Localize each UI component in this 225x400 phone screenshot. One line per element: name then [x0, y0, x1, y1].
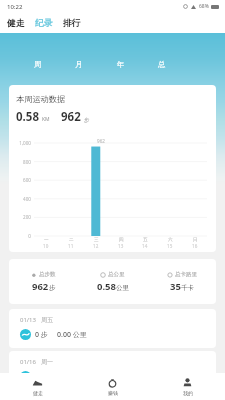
staticText: 0.58	[97, 280, 116, 293]
staticText: 962	[97, 138, 105, 144]
staticText: 总	[158, 60, 166, 69]
staticText: 千卡	[181, 284, 194, 292]
button[interactable]: 总步数	[9, 271, 78, 293]
staticText: 周一	[41, 358, 53, 366]
staticText: 14	[142, 243, 148, 249]
staticText: 年	[117, 60, 125, 69]
staticText: 本周运动数据	[16, 94, 66, 104]
staticText: 1,000	[9, 140, 31, 146]
staticText: 周五	[41, 316, 53, 324]
staticText: 公里	[116, 284, 129, 292]
staticText: 一	[44, 237, 49, 243]
staticText: 0.58	[16, 109, 39, 125]
staticText: 五	[143, 237, 148, 243]
staticText: 总公里	[108, 271, 125, 278]
button[interactable]: 赚钱	[75, 373, 150, 400]
staticText: 步	[84, 117, 90, 124]
staticText: 13	[118, 243, 124, 249]
staticText: 0.00 公里	[57, 330, 87, 340]
button[interactable]: 健走	[2, 15, 30, 32]
staticText: 400	[9, 196, 31, 202]
button[interactable]: 月	[68, 57, 90, 72]
staticText: 01/16	[20, 358, 36, 366]
staticText: 排行	[63, 18, 81, 29]
staticText: 600	[9, 177, 31, 183]
button[interactable]: 排行	[58, 15, 86, 32]
button[interactable]: 年	[110, 57, 132, 72]
staticText: 12	[93, 243, 99, 249]
staticText: 健走	[33, 390, 43, 396]
staticText: 步	[49, 284, 56, 292]
button[interactable]: 我的	[150, 373, 225, 400]
staticText: 200	[9, 214, 31, 220]
staticText: 16	[192, 243, 198, 249]
staticText: 10:22	[7, 3, 23, 11]
staticText: KM	[42, 116, 50, 123]
staticText: 962	[61, 109, 81, 125]
staticText: 月	[75, 60, 83, 69]
staticText: 0	[9, 233, 31, 239]
staticText: 0 步	[35, 372, 48, 382]
button[interactable]: 总公里	[78, 271, 147, 293]
staticText: 962	[32, 280, 49, 293]
button[interactable]: 纪录	[30, 15, 58, 32]
staticText: 三	[94, 237, 99, 243]
button[interactable]: 01/16	[9, 351, 216, 390]
staticText: 六	[168, 237, 173, 243]
staticText: 11	[68, 243, 74, 249]
staticText: 日	[193, 237, 198, 243]
button[interactable]: 01/13	[9, 309, 216, 348]
staticText: 68%	[199, 3, 209, 10]
staticText: 10	[43, 243, 49, 249]
staticText: 0 步	[35, 330, 48, 340]
staticText: 15	[167, 243, 173, 249]
staticText: 周	[34, 60, 42, 69]
staticText: 800	[9, 159, 31, 165]
staticText: 二	[69, 237, 74, 243]
staticText: 总步数	[39, 271, 56, 278]
staticText: 四	[119, 237, 124, 243]
button[interactable]: 总	[151, 57, 173, 72]
button[interactable]: 健走	[0, 373, 75, 400]
button[interactable]: 总卡路里	[147, 271, 216, 293]
staticText: 赚钱	[108, 390, 118, 396]
staticText: 总卡路里	[175, 271, 197, 278]
staticText: 我的	[183, 390, 193, 396]
staticText: 35	[170, 280, 181, 293]
staticText: 健走	[7, 18, 25, 29]
staticText: 01/13	[20, 316, 36, 324]
staticText: 纪录	[35, 18, 53, 29]
button[interactable]: 周	[27, 57, 49, 72]
